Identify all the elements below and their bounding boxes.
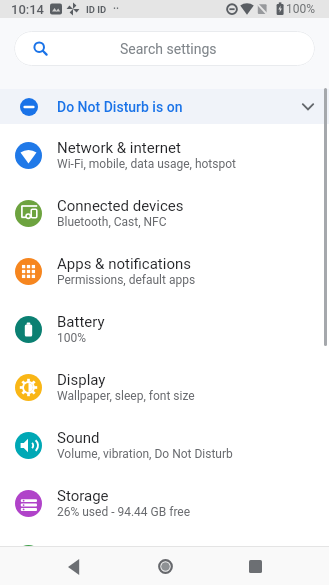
staticText: Bluetooth, Cast, NFC	[57, 215, 167, 229]
staticText: 10:14	[11, 2, 45, 17]
staticText: Display	[57, 371, 106, 389]
button[interactable]: Battery	[0, 300, 329, 358]
button[interactable]	[125, 546, 205, 585]
button[interactable]: Display	[0, 358, 329, 416]
button[interactable]: Do Not Disturb is on	[0, 89, 329, 124]
staticText: Network & internet	[57, 139, 181, 157]
button[interactable]: Search settings	[14, 31, 315, 66]
staticText: Apps & notifications	[57, 255, 191, 273]
button[interactable]: Security & location	[0, 532, 329, 546]
staticText: 26% used - 94.44 GB free	[57, 505, 191, 519]
staticText: Permissions, default apps	[57, 273, 196, 287]
staticText: 100%	[286, 2, 316, 16]
staticText: Sound	[57, 429, 100, 447]
staticText: 100%	[57, 331, 87, 345]
staticText: Storage	[57, 487, 109, 505]
staticText: ID ID	[86, 4, 107, 15]
button[interactable]	[215, 546, 295, 585]
button[interactable]	[34, 546, 114, 585]
button[interactable]: Network & internet	[0, 126, 329, 184]
staticText: Wallpaper, sleep, font size	[57, 389, 195, 403]
staticText: Do Not Disturb is on	[57, 99, 183, 115]
staticText: Volume, vibration, Do Not Disturb	[57, 447, 233, 461]
staticText: Search settings	[120, 41, 217, 57]
staticText: Connected devices	[57, 197, 184, 215]
staticText: Wi-Fi, mobile, data usage, hotspot	[57, 157, 236, 171]
staticText: Battery	[57, 313, 105, 331]
button[interactable]: Sound	[0, 416, 329, 474]
staticText: ··	[113, 3, 120, 15]
button[interactable]: Storage	[0, 474, 329, 532]
button[interactable]: Apps & notifications	[0, 242, 329, 300]
button[interactable]: Connected devices	[0, 184, 329, 242]
